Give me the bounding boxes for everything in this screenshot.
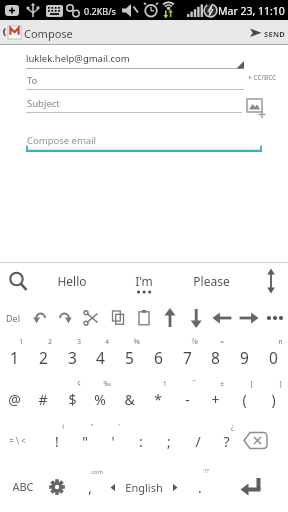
staticText: 1 bbox=[19, 337, 23, 346]
staticText: 7 bbox=[183, 347, 192, 368]
staticText: ; bbox=[167, 432, 171, 451]
staticText: $ bbox=[68, 390, 77, 409]
staticText: ABC bbox=[12, 479, 34, 494]
staticText: † bbox=[163, 379, 167, 388]
staticText: - bbox=[185, 390, 190, 409]
staticText: SEND bbox=[264, 29, 286, 39]
staticText: . bbox=[198, 478, 202, 497]
staticText: Hello bbox=[57, 273, 87, 289]
staticText: 8 bbox=[211, 347, 220, 368]
staticText: 9 bbox=[240, 347, 249, 368]
staticText: ¿ bbox=[231, 422, 234, 431]
staticText: i bbox=[62, 422, 64, 431]
staticText: ’ bbox=[118, 422, 120, 431]
staticText: ) bbox=[271, 390, 276, 409]
staticText: : bbox=[139, 432, 143, 451]
staticText: n bbox=[278, 337, 283, 346]
staticText: ? bbox=[223, 432, 230, 451]
staticText: * bbox=[154, 390, 162, 409]
staticText: # bbox=[38, 390, 48, 409]
staticText: 3 bbox=[68, 347, 77, 368]
staticText: 3 bbox=[77, 337, 81, 346]
staticText: To bbox=[27, 74, 38, 87]
staticText: 6 bbox=[154, 347, 163, 368]
staticText: ! bbox=[55, 432, 59, 451]
staticText: .com bbox=[90, 468, 103, 475]
staticText: 0 bbox=[269, 347, 278, 368]
staticText: " bbox=[82, 432, 88, 451]
staticText: Compose email bbox=[27, 134, 97, 147]
staticText: , bbox=[88, 478, 92, 497]
staticText: English bbox=[125, 480, 163, 495]
staticText: ] bbox=[279, 379, 282, 388]
staticText: ( bbox=[242, 390, 247, 409]
staticText: @ bbox=[8, 390, 21, 409]
staticText: ″ bbox=[90, 422, 93, 431]
staticText: Subject bbox=[27, 97, 60, 110]
staticText: '!? bbox=[203, 467, 209, 475]
staticText: 5⁄8 bbox=[133, 336, 140, 346]
staticText: & bbox=[124, 390, 135, 409]
staticText: + bbox=[211, 390, 220, 409]
staticText: Del bbox=[6, 312, 20, 324]
staticText: % bbox=[94, 390, 106, 409]
staticText: 4 bbox=[105, 337, 109, 346]
staticText: ' bbox=[111, 432, 115, 451]
staticText: 7⁄8 bbox=[191, 336, 198, 346]
staticText: = bbox=[220, 337, 224, 346]
staticText: 5 bbox=[125, 347, 134, 368]
staticText: Mar 23, 11:10 bbox=[218, 4, 285, 18]
staticText: 0.2KB/s bbox=[84, 5, 116, 17]
staticText: luklek.help@gmail.com bbox=[26, 52, 130, 65]
staticText: ‰ bbox=[103, 379, 111, 388]
staticText: / bbox=[195, 432, 201, 451]
staticText: 2 bbox=[39, 347, 48, 368]
staticText: ¯ bbox=[192, 379, 196, 388]
staticText: ± bbox=[220, 379, 224, 388]
staticText: 2 bbox=[48, 337, 52, 346]
staticText: + CC/BCC bbox=[248, 73, 277, 82]
staticText: [ bbox=[250, 379, 253, 388]
staticText: Compose bbox=[24, 26, 73, 41]
staticText: = \ < bbox=[9, 435, 26, 446]
staticText: Please bbox=[193, 273, 230, 289]
staticText: 1 bbox=[10, 347, 19, 368]
staticText: ¢ bbox=[77, 379, 81, 388]
staticText: I'm bbox=[135, 273, 153, 289]
staticText: 4 bbox=[96, 347, 105, 368]
